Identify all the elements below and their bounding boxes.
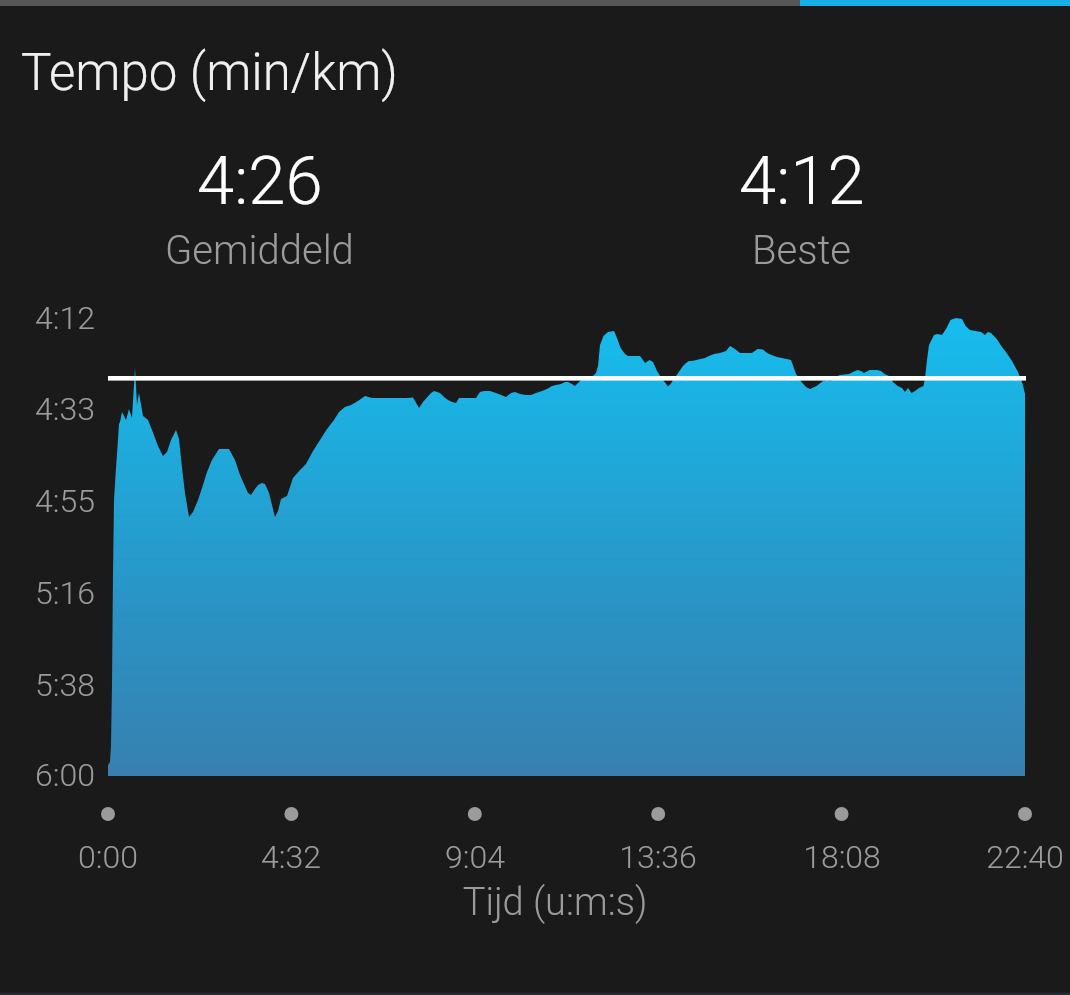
staticText: 6:00 xyxy=(0,756,95,794)
button[interactable]: 4:12 xyxy=(534,142,1069,274)
staticText: 4:33 xyxy=(0,390,95,428)
button[interactable]: Tempo grafiek xyxy=(108,300,1026,794)
staticText: 4:12 xyxy=(0,299,95,337)
staticText: 4:55 xyxy=(0,482,95,520)
staticText: 9:04 xyxy=(385,838,565,876)
button[interactable]: 4:26 xyxy=(0,142,527,274)
staticText: 4:12 xyxy=(739,142,865,221)
staticText: 13:36 xyxy=(568,838,748,876)
staticText: Gemiddeld xyxy=(165,227,354,274)
staticText: 0:00 xyxy=(18,838,198,876)
staticText: 22:40 xyxy=(935,838,1070,876)
staticText: 18:08 xyxy=(752,838,932,876)
staticText: Beste xyxy=(752,227,852,274)
staticText: Tijd (u:m:s) xyxy=(20,880,1070,925)
staticText: 4:32 xyxy=(201,838,381,876)
staticText: 5:38 xyxy=(0,666,95,704)
staticText: Tempo (min/km) xyxy=(21,43,398,103)
staticText: 5:16 xyxy=(0,574,95,612)
staticText: 4:26 xyxy=(197,142,323,221)
